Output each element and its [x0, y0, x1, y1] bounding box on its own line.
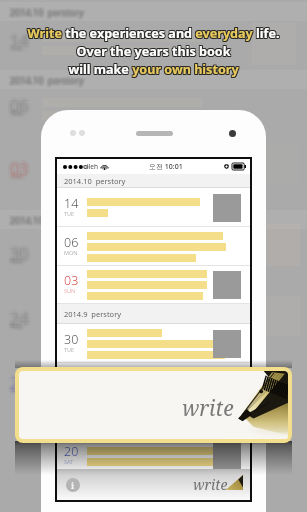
staticText: Over the years this book: [76, 43, 231, 60]
button[interactable]: 06: [57, 227, 250, 266]
staticText: 30: [64, 331, 79, 348]
staticText: 03: [7, 161, 26, 183]
staticText: TUE: [12, 174, 25, 184]
staticText: 2014.10 perstory: [10, 72, 84, 84]
staticText: Over the years this book: [75, 43, 230, 60]
staticText: i: [71, 479, 75, 491]
staticText: TUE: [9, 173, 22, 183]
staticText: TUE: [12, 108, 25, 118]
staticText: 24: [7, 311, 26, 333]
staticText: 14: [7, 31, 26, 53]
staticText: 2014.10 perstory: [10, 8, 84, 20]
staticText: 30: [10, 240, 29, 262]
staticText: Over the years this book: [77, 44, 232, 61]
staticText: 24: [10, 309, 29, 331]
staticText: 24: [10, 311, 29, 333]
staticText: 14: [11, 31, 30, 53]
button[interactable]: 24: [57, 363, 250, 402]
staticText: 2014.10 perstory: [8, 214, 82, 226]
staticText: 30: [13, 244, 32, 266]
staticText: TUE: [10, 172, 23, 182]
staticText: 30: [13, 240, 32, 262]
staticText: 2014.10 perstory: [9, 4, 83, 16]
staticText: TUE: [10, 111, 23, 121]
staticText: 2014.10 perstory: [10, 215, 84, 227]
staticText: 30: [11, 242, 30, 264]
staticText: TUE: [11, 173, 24, 183]
staticText: TUE: [11, 43, 24, 53]
staticText: 20: [7, 373, 26, 395]
staticText: TUE: [8, 322, 21, 332]
staticText: 30: [7, 246, 26, 268]
staticText: TUE: [8, 257, 21, 267]
staticText: 2014.10 perstory: [10, 6, 84, 18]
staticText: TUE: [10, 108, 23, 118]
staticText: 24: [11, 308, 30, 330]
staticText: 06: [10, 94, 29, 116]
staticText: Over the years this book: [75, 42, 230, 59]
staticText: TUE: [9, 110, 22, 120]
staticText: Write the experiences and everyday life.: [26, 24, 279, 41]
staticText: 06: [7, 92, 26, 114]
staticText: 06: [7, 94, 26, 116]
staticText: SUN: [64, 287, 76, 294]
staticText: TUE: [8, 323, 21, 333]
staticText: 06: [7, 95, 26, 117]
staticText: 14: [9, 30, 28, 52]
staticText: 2014.10 perstory: [11, 72, 85, 84]
staticText: 30: [7, 242, 26, 264]
staticText: 2014.10 perstory: [11, 216, 85, 228]
staticText: TUE: [11, 44, 24, 54]
staticText: Write the experiences and everyday life.: [26, 26, 279, 43]
staticText: TUE: [10, 174, 23, 184]
staticText: 2014.10 perstory: [12, 214, 86, 226]
staticText: 03: [10, 161, 29, 183]
staticText: will make your own history: [69, 60, 240, 77]
staticText: TUE: [10, 323, 23, 333]
staticText: Over the years this book: [77, 42, 232, 59]
button[interactable]: 03: [57, 266, 250, 304]
button[interactable]: 30: [57, 324, 250, 363]
staticText: TUE: [9, 172, 22, 182]
button[interactable]: Info: [57, 469, 250, 500]
button[interactable]: write: [19, 371, 288, 439]
staticText: 20: [7, 371, 26, 393]
button[interactable]: 14: [57, 188, 250, 227]
staticText: 24: [10, 305, 29, 327]
staticText: 24: [9, 308, 28, 330]
staticText: TUE: [12, 46, 25, 56]
staticText: 2014.10 perstory: [9, 8, 83, 20]
staticText: TUE: [11, 387, 24, 397]
staticText: 2014.10 perstory: [12, 74, 86, 86]
staticText: TUE: [12, 44, 25, 54]
staticText: 2014.10 perstory: [8, 4, 82, 16]
staticText: TUE: [12, 259, 25, 269]
staticText: TUE: [10, 110, 23, 120]
staticText: 30: [9, 242, 28, 264]
staticText: 24: [11, 309, 30, 331]
staticText: 14: [7, 33, 26, 55]
staticText: 03: [7, 157, 26, 179]
staticText: Write the experiences and everyday life.: [26, 25, 279, 42]
staticText: 14: [9, 33, 28, 55]
staticText: TUE: [11, 255, 24, 265]
staticText: 2014.10 perstory: [8, 72, 82, 84]
staticText: TUE: [11, 171, 24, 181]
staticText: 2014.10 perstory: [12, 212, 86, 224]
staticText: TUE: [11, 107, 24, 117]
button[interactable]: 22: [57, 402, 250, 439]
staticText: TUE: [12, 111, 25, 121]
staticText: 24: [11, 305, 30, 327]
staticText: 2014.10 perstory: [12, 7, 86, 19]
staticText: TUE: [10, 44, 23, 54]
staticText: 03: [13, 161, 32, 183]
staticText: Over the years this book: [76, 42, 231, 59]
button[interactable]: 20: [57, 439, 250, 473]
staticText: 24: [9, 307, 28, 329]
staticText: 03: [10, 155, 29, 177]
staticText: 06: [9, 94, 28, 116]
staticText: 2014.10 perstory: [11, 75, 85, 87]
staticText: TUE: [9, 384, 22, 394]
staticText: 2014.10 perstory: [9, 72, 83, 84]
staticText: TUE: [12, 45, 25, 55]
